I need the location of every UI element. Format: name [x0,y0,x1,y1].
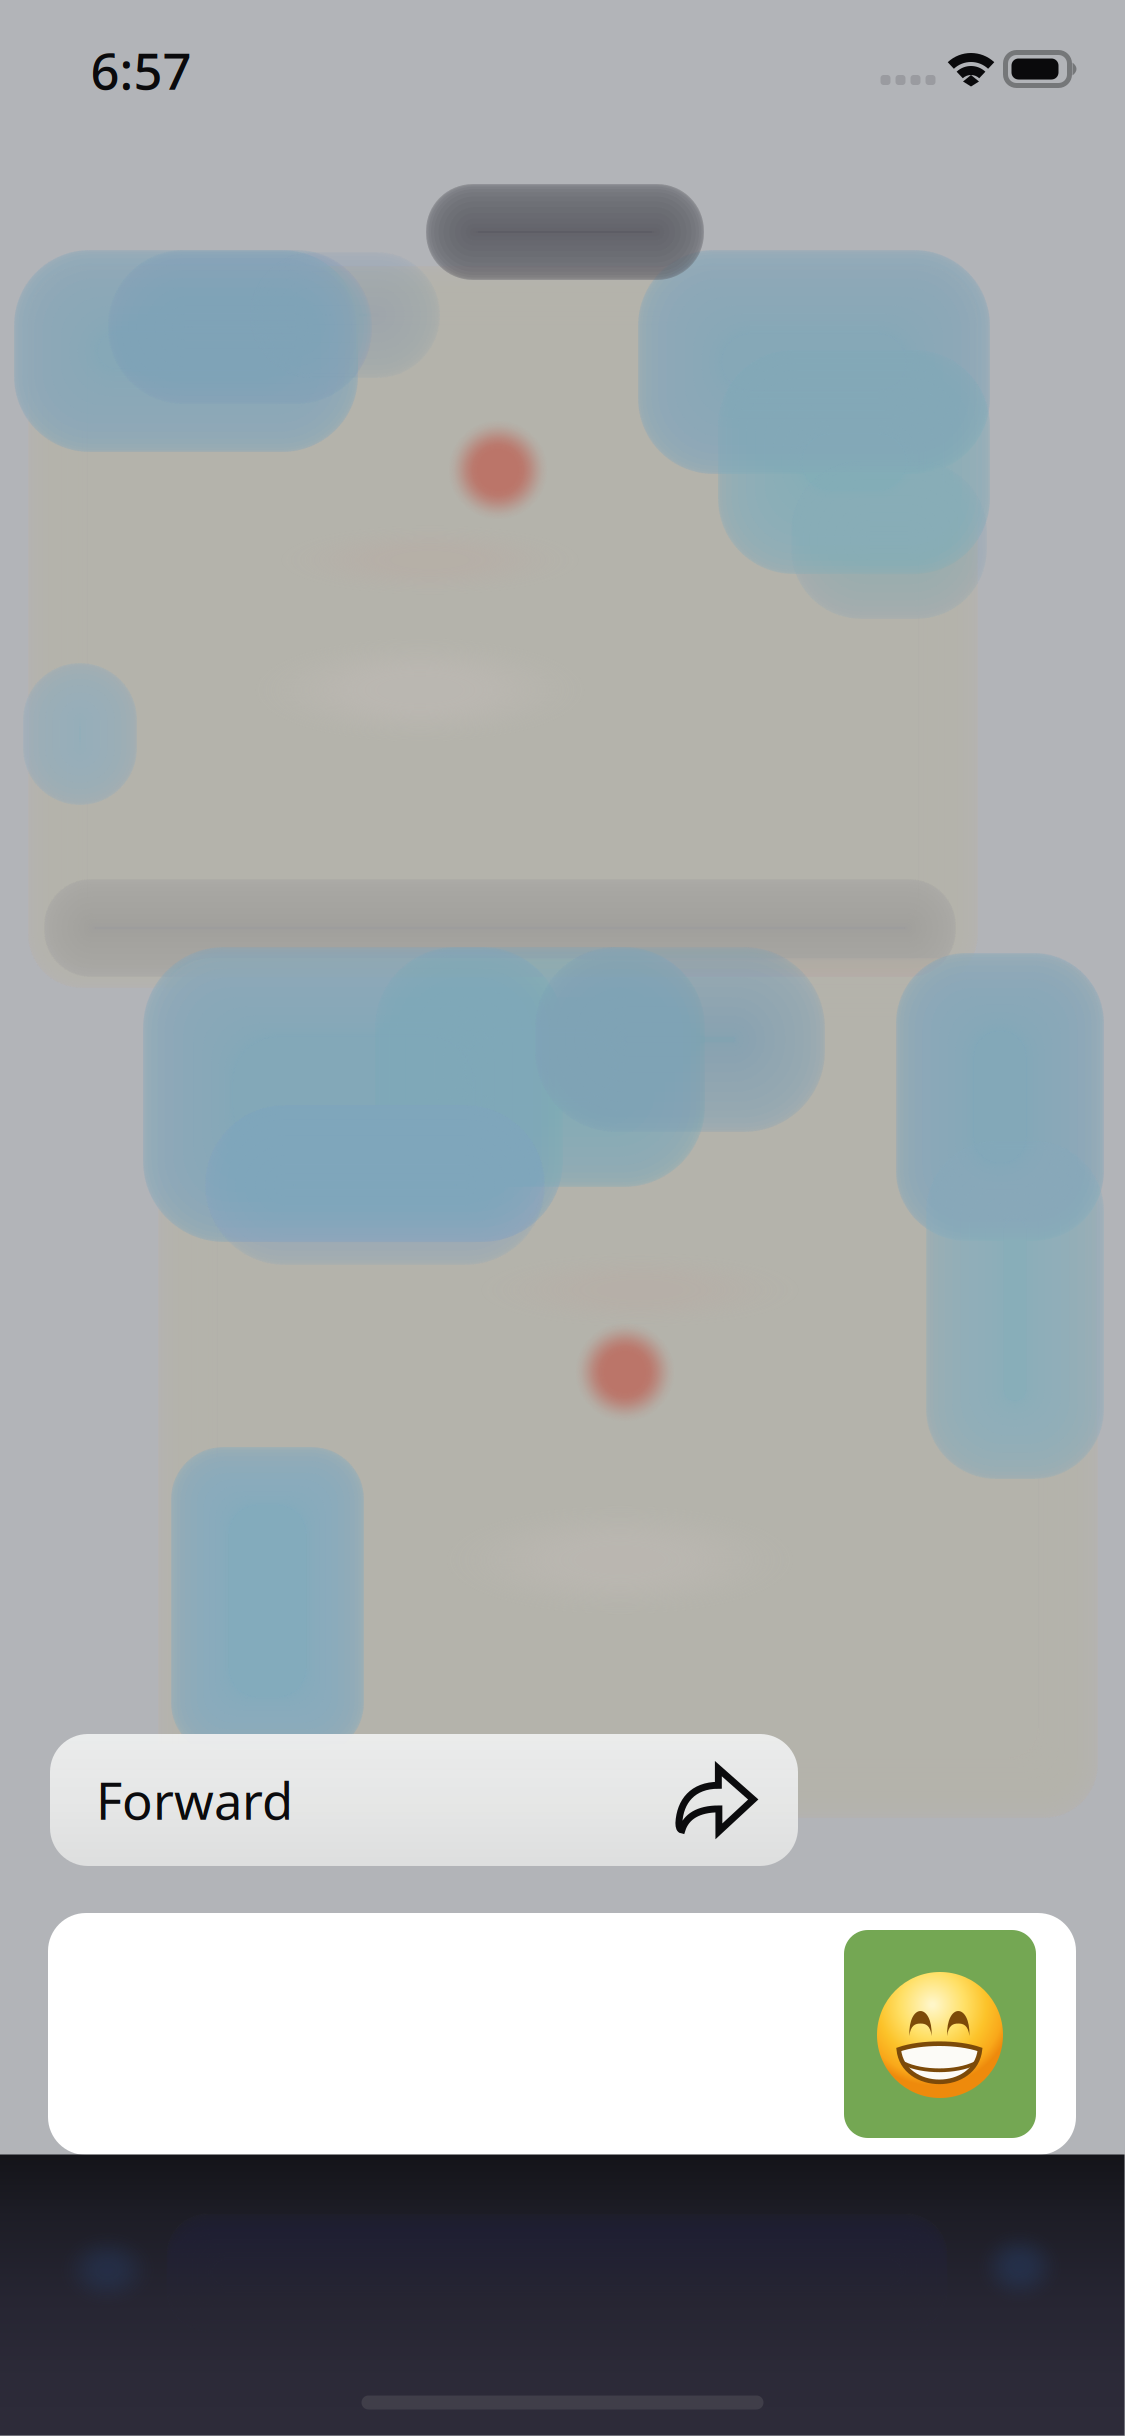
staticText: 6:57 [90,36,191,104]
staticText: Forward [96,1766,293,1834]
button[interactable]: Forward [50,1734,798,1866]
